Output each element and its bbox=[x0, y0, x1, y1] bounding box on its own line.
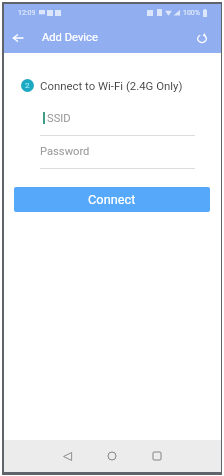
button[interactable]: Refresh bbox=[186, 22, 218, 53]
staticText: 12:09 bbox=[18, 9, 36, 17]
staticText: Password bbox=[40, 145, 90, 158]
button[interactable]: SSID bbox=[40, 109, 195, 136]
button[interactable]: Navigate up bbox=[4, 23, 32, 53]
staticText: 2 bbox=[25, 81, 30, 90]
staticText: Connect bbox=[88, 192, 136, 207]
button[interactable]: Home bbox=[101, 445, 123, 467]
button[interactable]: Connect bbox=[14, 187, 210, 212]
staticText: SSID bbox=[47, 112, 71, 125]
button[interactable]: Password bbox=[40, 142, 195, 169]
button[interactable]: Back bbox=[56, 445, 78, 467]
staticText: 100% bbox=[183, 9, 200, 17]
staticText: Connect to Wi-Fi (2.4G Only) bbox=[40, 79, 183, 92]
staticText: Add Device bbox=[42, 31, 98, 44]
button[interactable]: Recent apps bbox=[146, 445, 168, 467]
